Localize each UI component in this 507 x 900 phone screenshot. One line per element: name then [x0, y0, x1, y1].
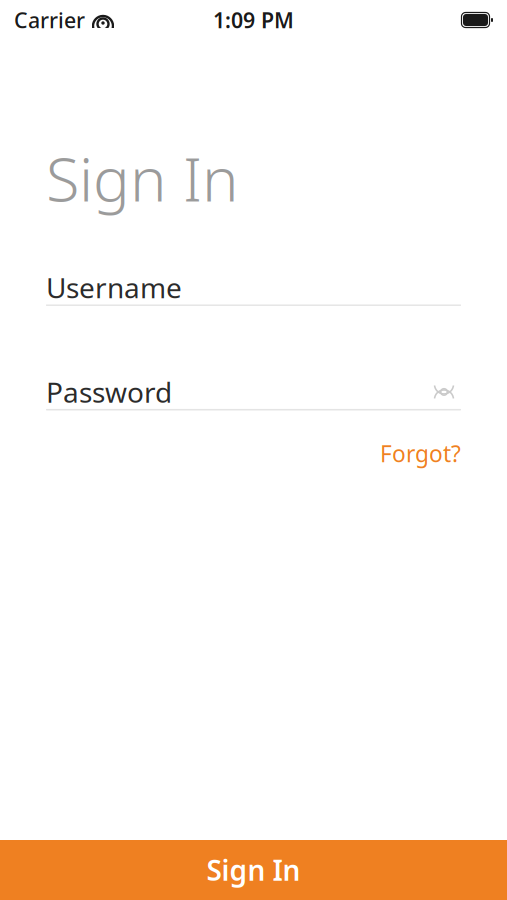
staticText: Sign In	[206, 851, 300, 889]
staticText: Sign In	[46, 137, 239, 218]
staticText: Username	[46, 269, 182, 306]
button[interactable]: Forgot?	[380, 432, 461, 474]
button[interactable]: Show password	[427, 379, 461, 405]
staticText: Password	[46, 373, 172, 411]
staticText: Carrier	[14, 6, 85, 34]
staticText: 1:09 PM	[213, 6, 294, 34]
button[interactable]: Sign In	[0, 840, 507, 900]
staticText: Forgot?	[380, 438, 461, 468]
